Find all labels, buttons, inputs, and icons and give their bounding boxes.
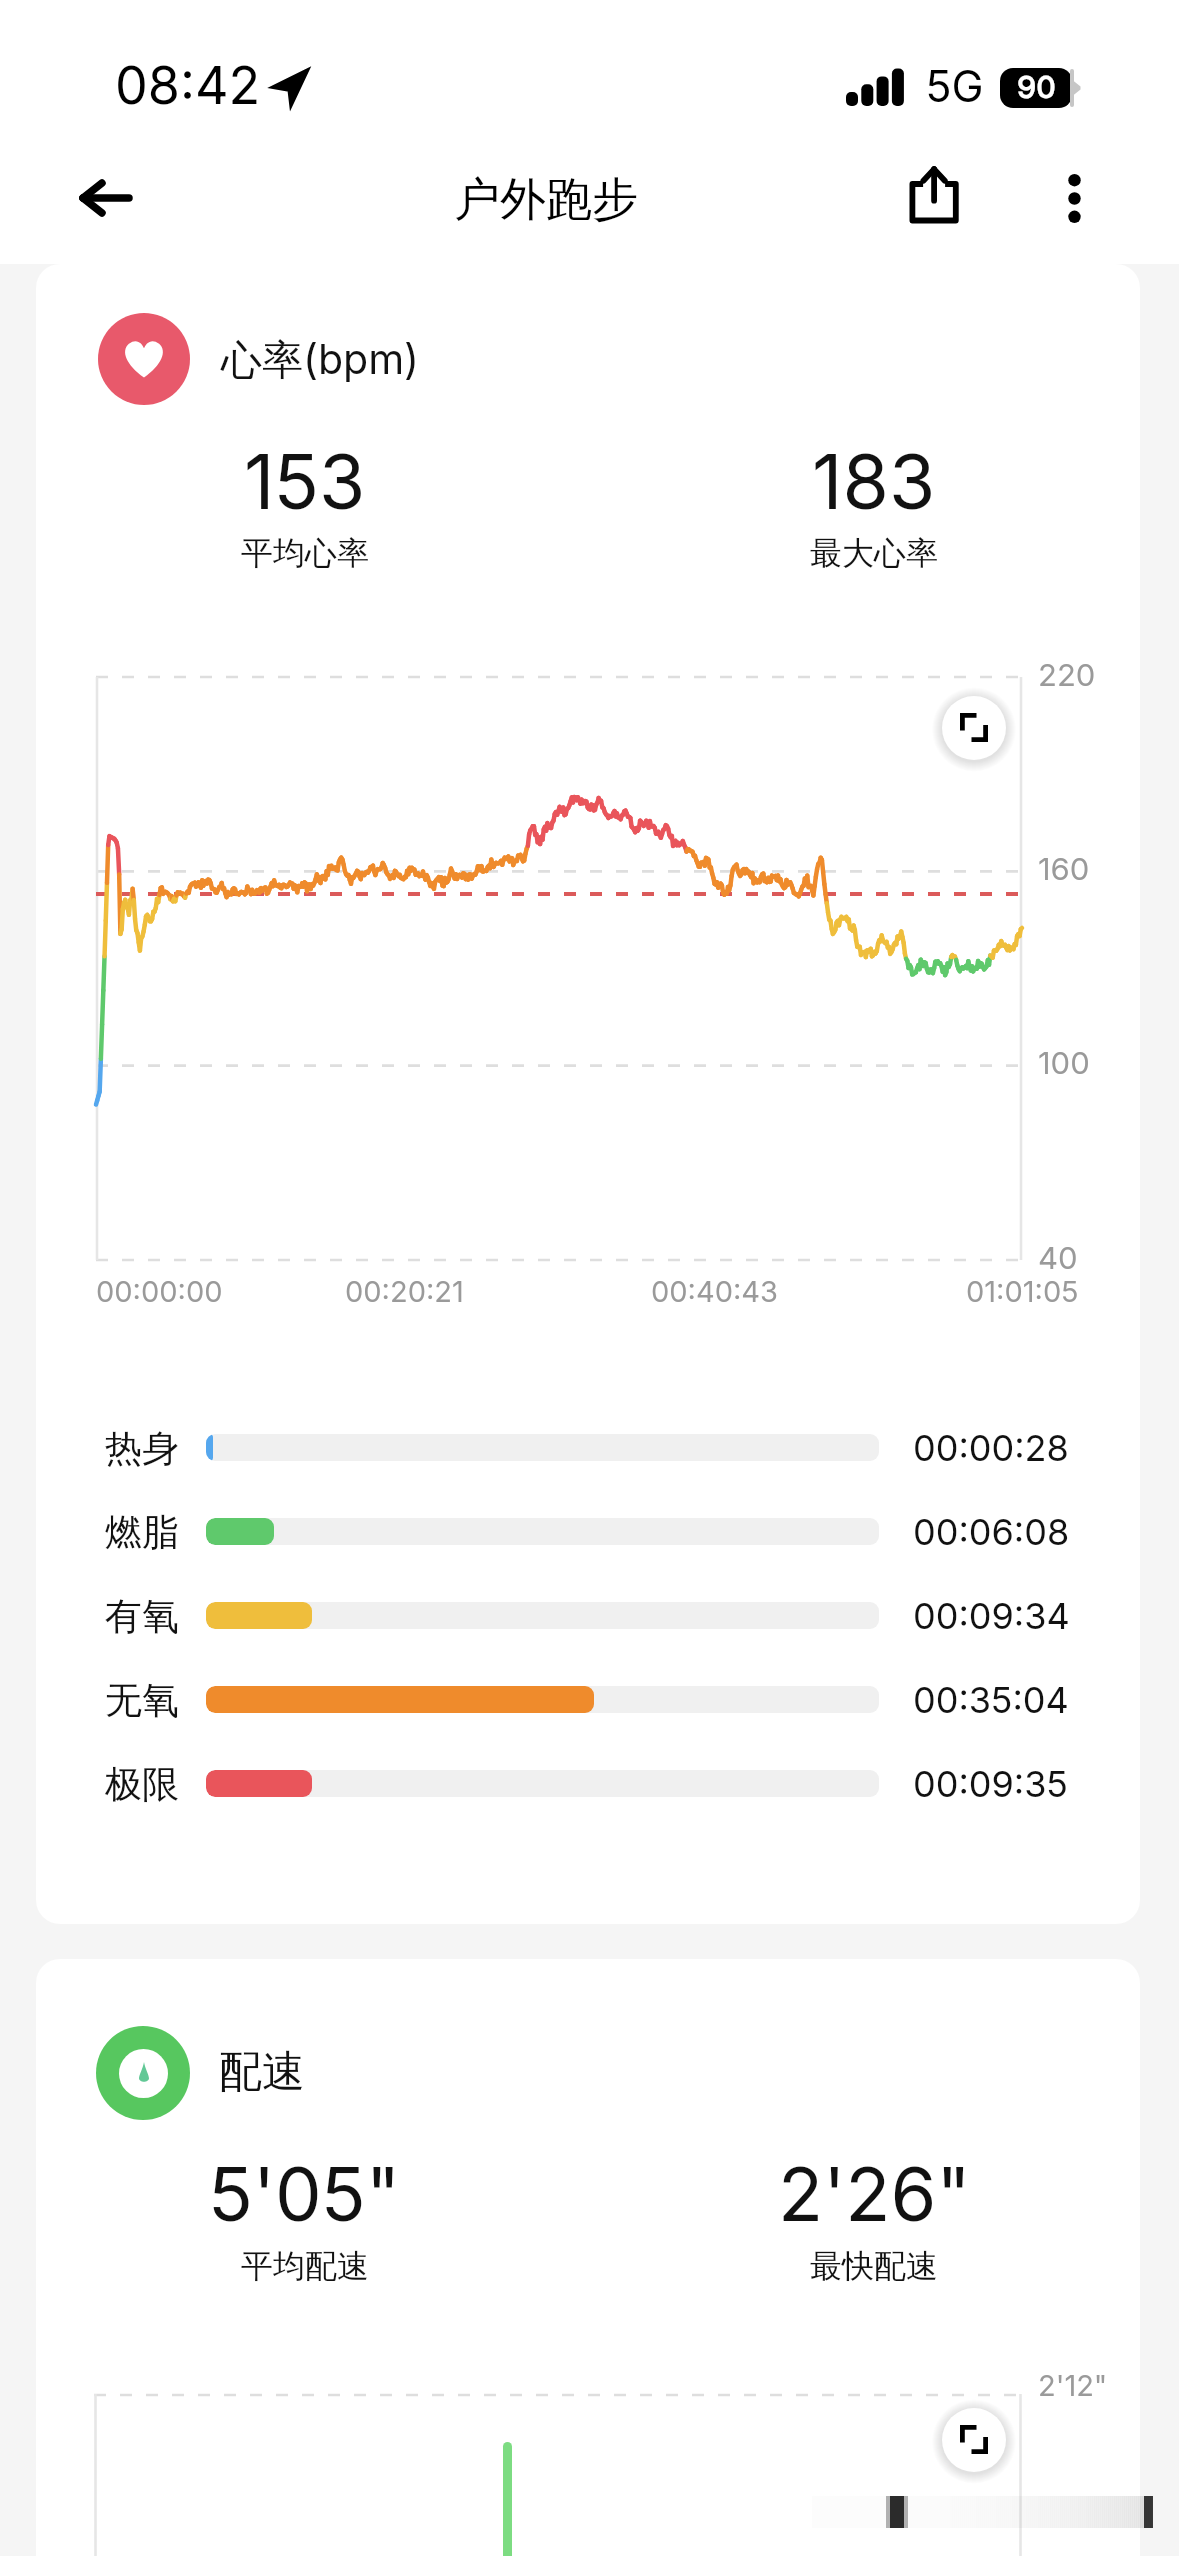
staticText: 极限 (105, 1761, 179, 1808)
staticText: 00:00:00 (96, 1274, 223, 1309)
staticText: 心率(bpm) (221, 334, 420, 386)
staticText: 100 (1038, 1044, 1090, 1082)
staticText: 00:20:21 (345, 1274, 464, 1309)
staticText: 平均配速 (241, 2246, 369, 2286)
button[interactable]: More options (1029, 153, 1119, 243)
staticText: 5G (926, 60, 984, 112)
staticText: 5'05" (209, 2149, 401, 2239)
staticText: 有氧 (105, 1593, 179, 1640)
staticText: 燃脂 (105, 1509, 179, 1556)
staticText: 00:06:08 (913, 1510, 1070, 1554)
button[interactable]: Share (888, 146, 980, 238)
staticText: 01:01:05 (966, 1274, 1079, 1309)
staticText: 00:40:43 (651, 1274, 778, 1309)
staticText: 最大心率 (810, 533, 938, 573)
staticText: 153 (244, 436, 366, 527)
staticText: 热身 (105, 1425, 179, 1472)
staticText: 40 (1038, 1239, 1078, 1277)
staticText: 2'12" (1038, 2368, 1108, 2403)
staticText: 平均心率 (241, 533, 369, 573)
staticText: 220 (1038, 656, 1096, 694)
staticText: 无氧 (105, 1677, 179, 1724)
button[interactable]: Expand pace chart (942, 2408, 1006, 2472)
staticText: 最快配速 (810, 2246, 938, 2286)
staticText: 183 (812, 436, 936, 527)
button[interactable]: Back (60, 153, 150, 243)
button[interactable]: Expand heart rate chart (942, 696, 1006, 760)
staticText: 2'26" (778, 2149, 971, 2239)
staticText: 00:35:04 (913, 1678, 1069, 1722)
staticText: 160 (1038, 850, 1090, 888)
staticText: 00:09:34 (913, 1594, 1070, 1638)
staticText: 配速 (219, 2045, 305, 2099)
staticText: 户外跑步 (454, 171, 638, 229)
staticText: 90 (1017, 68, 1056, 106)
staticText: 08:42 (115, 54, 261, 117)
staticText: 00:09:35 (913, 1762, 1068, 1806)
staticText: 00:00:28 (913, 1426, 1069, 1470)
